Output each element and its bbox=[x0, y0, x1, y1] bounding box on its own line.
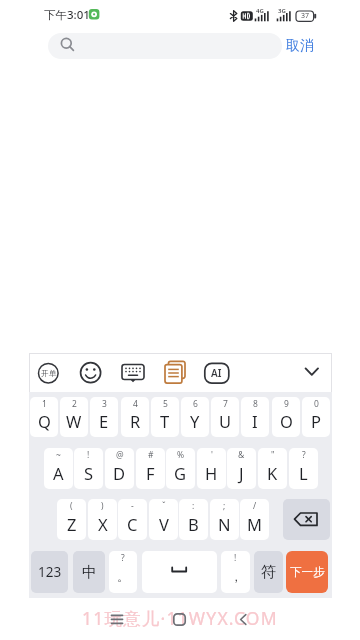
button[interactable] bbox=[163, 360, 187, 385]
button[interactable]: ; bbox=[210, 499, 239, 540]
button[interactable]: ? bbox=[289, 448, 318, 489]
button[interactable]: # bbox=[136, 448, 165, 489]
staticText: ; bbox=[223, 500, 226, 512]
staticText: N bbox=[218, 513, 231, 535]
staticText: 0 bbox=[314, 398, 319, 410]
button[interactable]: ' bbox=[197, 448, 226, 489]
staticText: " bbox=[271, 449, 275, 461]
staticText: U bbox=[219, 410, 232, 432]
staticText: Z bbox=[67, 513, 77, 535]
staticText: E bbox=[99, 410, 109, 432]
staticText: J bbox=[239, 462, 244, 484]
button[interactable] bbox=[120, 361, 146, 385]
staticText: ~ bbox=[56, 449, 61, 461]
staticText: ( bbox=[70, 500, 73, 512]
staticText: X bbox=[98, 513, 108, 535]
button[interactable] bbox=[300, 360, 324, 384]
button[interactable]: " bbox=[258, 448, 287, 489]
staticText: 6 bbox=[193, 398, 198, 410]
staticText: 中 bbox=[82, 563, 97, 582]
button[interactable]: 4 bbox=[121, 397, 149, 437]
staticText: - bbox=[131, 500, 134, 512]
staticText: 11玩意儿·11WYX.COM bbox=[82, 606, 278, 630]
staticText: 123 bbox=[38, 563, 62, 581]
button[interactable]: / bbox=[240, 499, 269, 540]
staticText: 4G bbox=[256, 7, 264, 15]
staticText: 开单 bbox=[41, 369, 57, 379]
staticText: S bbox=[84, 462, 94, 484]
staticText: T bbox=[160, 410, 170, 432]
button[interactable]: 123 bbox=[31, 551, 68, 593]
staticText: C bbox=[127, 513, 138, 535]
button[interactable]: 5 bbox=[151, 397, 179, 437]
staticText: Q bbox=[38, 410, 51, 432]
staticText: 1 bbox=[42, 398, 47, 410]
button[interactable]: : bbox=[179, 499, 208, 540]
staticText: F bbox=[146, 462, 155, 484]
staticText: ? bbox=[302, 449, 306, 461]
staticText: H bbox=[205, 462, 218, 484]
staticText: ! bbox=[87, 449, 90, 461]
staticText: 取消 bbox=[286, 37, 314, 55]
button[interactable]: 6 bbox=[181, 397, 209, 437]
staticText: G bbox=[174, 462, 187, 484]
button[interactable]: ! bbox=[221, 551, 250, 593]
staticText: ? bbox=[121, 552, 125, 564]
staticText: B bbox=[188, 513, 199, 535]
button[interactable]: 2 bbox=[60, 397, 88, 437]
staticText: 8 bbox=[253, 398, 258, 410]
button[interactable]: - bbox=[118, 499, 147, 540]
button[interactable] bbox=[168, 608, 192, 632]
staticText: L bbox=[299, 462, 308, 484]
staticText: M bbox=[247, 513, 262, 535]
staticText: V bbox=[159, 513, 169, 535]
staticText: : bbox=[192, 500, 195, 512]
staticText: 2 bbox=[72, 398, 77, 410]
staticText: Y bbox=[190, 410, 200, 432]
staticText: 37 bbox=[301, 11, 310, 21]
button[interactable]: 3 bbox=[90, 397, 118, 437]
button[interactable] bbox=[203, 361, 230, 384]
button[interactable]: 符 bbox=[254, 551, 283, 593]
button[interactable]: ~ bbox=[44, 448, 73, 489]
staticText: W bbox=[66, 410, 82, 432]
button[interactable] bbox=[48, 33, 282, 59]
staticText: 下午3:01 bbox=[44, 7, 90, 23]
button[interactable]: % bbox=[166, 448, 195, 489]
button[interactable]: 1 bbox=[30, 397, 58, 437]
button[interactable]: 取消 bbox=[284, 33, 316, 59]
staticText: 4 bbox=[133, 398, 138, 410]
staticText: A bbox=[53, 462, 64, 484]
button[interactable]: & bbox=[227, 448, 256, 489]
button[interactable]: 0 bbox=[302, 397, 330, 437]
button[interactable]: 8 bbox=[241, 397, 269, 437]
button[interactable]: ? bbox=[109, 551, 137, 593]
button[interactable]: 9 bbox=[272, 397, 300, 437]
staticText: 7 bbox=[223, 398, 228, 410]
staticText: @ bbox=[116, 449, 124, 461]
staticText: ˇ bbox=[162, 500, 166, 512]
button[interactable]: ) bbox=[88, 499, 117, 540]
button[interactable] bbox=[36, 361, 61, 386]
button[interactable]: ˇ bbox=[149, 499, 178, 540]
staticText: 3 bbox=[102, 398, 107, 410]
staticText: ' bbox=[211, 449, 213, 461]
button[interactable] bbox=[142, 551, 217, 593]
staticText: # bbox=[148, 449, 154, 461]
button[interactable]: ! bbox=[74, 448, 103, 489]
button[interactable] bbox=[231, 608, 255, 632]
button[interactable]: 中 bbox=[73, 551, 105, 593]
staticText: K bbox=[267, 462, 278, 484]
button[interactable]: 7 bbox=[211, 397, 239, 437]
button[interactable] bbox=[79, 361, 103, 385]
staticText: 下一步 bbox=[290, 565, 325, 579]
staticText: % bbox=[177, 449, 185, 461]
staticText: ， bbox=[230, 569, 242, 584]
button[interactable] bbox=[283, 499, 330, 540]
button[interactable]: ( bbox=[57, 499, 86, 540]
staticText: O bbox=[280, 410, 293, 432]
button[interactable]: @ bbox=[105, 448, 134, 489]
button[interactable]: 下一步 bbox=[286, 551, 328, 593]
staticText: R bbox=[130, 410, 141, 432]
button[interactable] bbox=[105, 608, 129, 632]
